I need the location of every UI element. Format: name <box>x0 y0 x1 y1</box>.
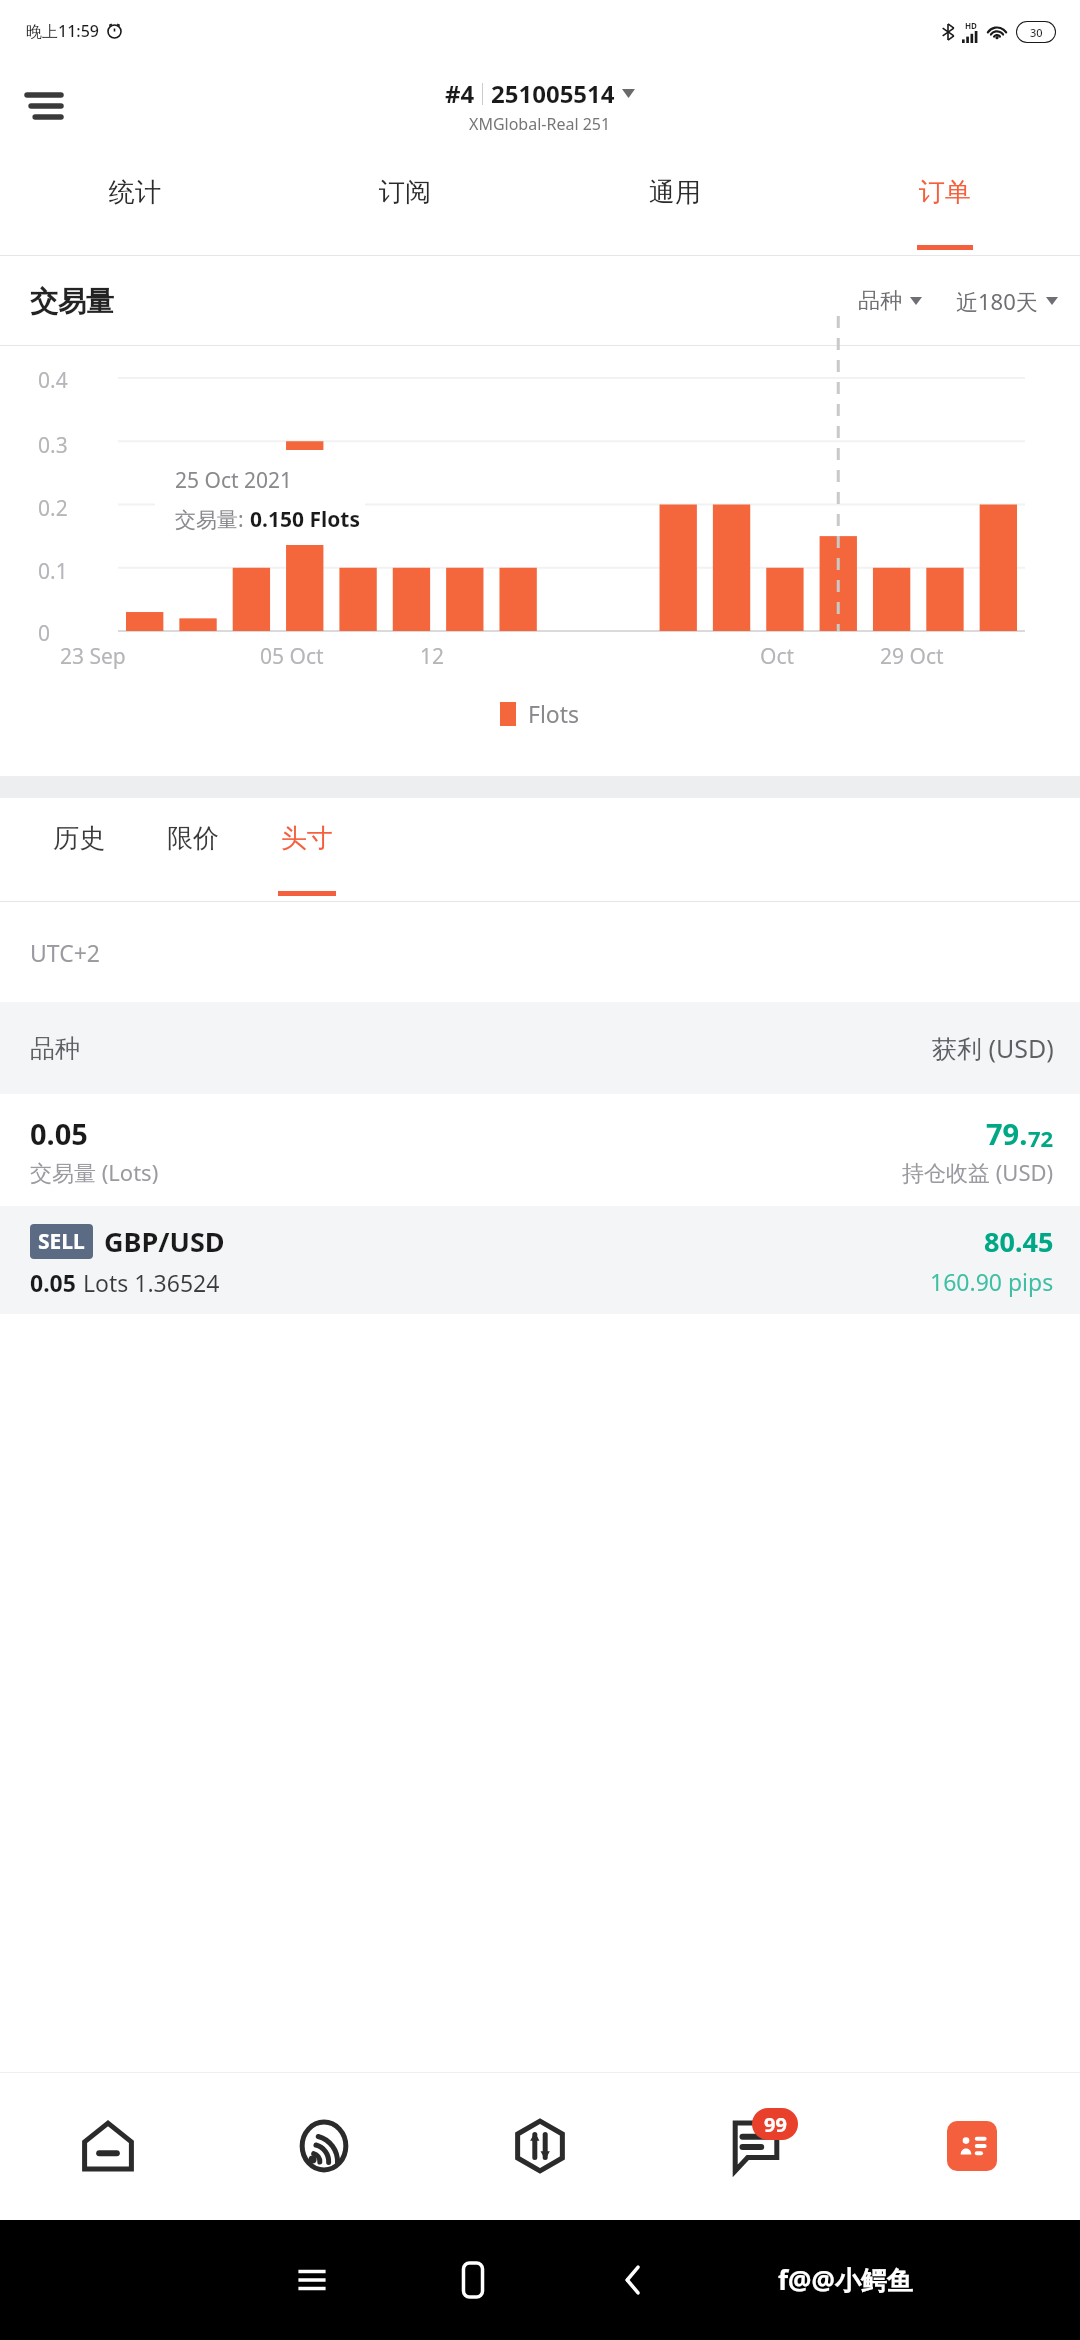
button[interactable]: 头寸 <box>250 798 364 902</box>
button[interactable]: Menu <box>12 74 76 138</box>
staticText: 0.1 <box>38 557 68 586</box>
staticText: 头寸 <box>281 822 333 855</box>
button[interactable]: #4 <box>445 77 635 135</box>
button[interactable]: Trade <box>432 2072 648 2220</box>
staticText: Oct <box>760 642 795 671</box>
button[interactable]: Signals <box>216 2072 432 2220</box>
staticText: XMGlobal-Real 251 <box>469 113 611 135</box>
button[interactable]: 近180天 <box>956 280 1058 322</box>
staticText: 0 <box>38 619 51 648</box>
button[interactable]: Home <box>456 2263 490 2297</box>
button[interactable]: 品种 <box>858 281 922 321</box>
button[interactable]: 统计 <box>0 150 270 256</box>
button[interactable]: 限价 <box>136 798 250 902</box>
staticText: 0.05 <box>30 1267 76 1298</box>
staticText: 99 <box>764 2111 787 2138</box>
staticText: 25 Oct 2021 <box>175 466 293 495</box>
staticText: GBP/USD <box>104 1223 225 1260</box>
staticText: 限价 <box>167 822 219 855</box>
staticText: 29 Oct <box>880 642 944 671</box>
staticText: 交易量 <box>30 284 114 319</box>
staticText: 获利 (USD) <box>932 1031 1054 1065</box>
button[interactable]: 历史 <box>22 798 136 902</box>
button[interactable]: 0.05 <box>0 1094 1080 1206</box>
staticText: 交易量: <box>175 505 250 534</box>
button[interactable]: 通用 <box>540 150 810 256</box>
staticText: 近180天 <box>956 286 1038 316</box>
staticText: 05 Oct <box>260 642 324 671</box>
button[interactable]: Messages <box>648 2072 864 2220</box>
button[interactable]: Back <box>617 2263 651 2297</box>
staticText: 持仓收益 (USD) <box>902 1157 1054 1187</box>
button[interactable]: 订阅 <box>270 150 540 256</box>
staticText: 0.4 <box>38 366 68 395</box>
staticText: 历史 <box>53 822 105 855</box>
button[interactable]: SELL <box>0 1206 1080 1314</box>
staticText: 交易量 (Lots) <box>30 1157 159 1187</box>
staticText: 80.45 <box>984 1223 1054 1260</box>
staticText: 通用 <box>649 176 701 209</box>
staticText: 订阅 <box>379 176 431 209</box>
staticText: f@@小鳄鱼 <box>778 2262 913 2298</box>
staticText: 72 <box>1028 1123 1054 1153</box>
staticText: 统计 <box>109 176 161 209</box>
staticText: Lots 1.36524 <box>83 1267 220 1298</box>
staticText: Flots <box>528 698 580 729</box>
staticText: 0.150 Flots <box>250 505 360 534</box>
staticText: 0.2 <box>38 494 68 523</box>
staticText: 251005514 <box>491 77 615 110</box>
staticText: 160.90 pips <box>930 1266 1054 1297</box>
staticText: 12 <box>420 642 445 671</box>
staticText: HD <box>965 20 977 31</box>
button[interactable]: Recents <box>295 2263 329 2297</box>
staticText: 品种 <box>30 1033 80 1064</box>
staticText: 晚上11:59 <box>26 20 99 42</box>
staticText: 79. <box>986 1114 1028 1153</box>
staticText: 23 Sep <box>60 642 126 671</box>
staticText: 品种 <box>858 287 902 315</box>
staticText: SELL <box>38 1227 85 1256</box>
staticText: UTC+2 <box>30 937 100 968</box>
staticText: #4 <box>445 77 475 110</box>
staticText: 0.05 <box>30 1114 88 1153</box>
staticText: 30 <box>1030 25 1043 40</box>
staticText: 订单 <box>919 176 971 209</box>
staticText: 0.3 <box>38 431 68 460</box>
button[interactable]: 订单 <box>810 150 1080 256</box>
button[interactable]: Account <box>864 2072 1080 2220</box>
button[interactable]: Home <box>0 2072 216 2220</box>
